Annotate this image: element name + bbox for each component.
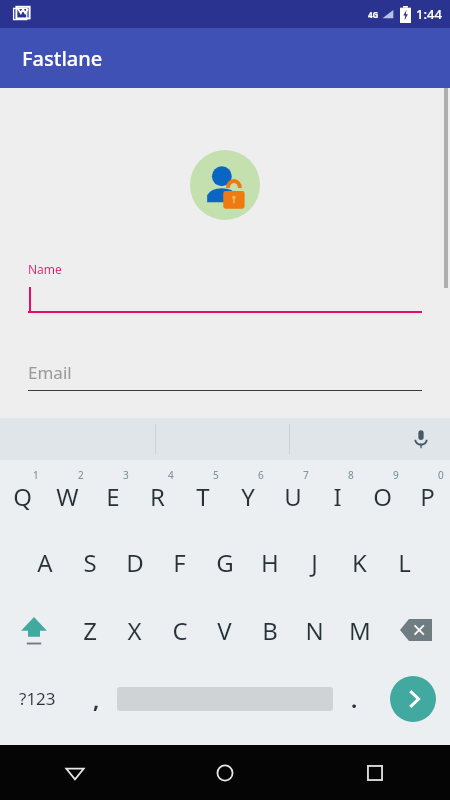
- staticText: P: [420, 480, 435, 513]
- staticText: C: [172, 614, 188, 647]
- button[interactable]: Shift: [0, 596, 67, 664]
- staticText: 9: [393, 468, 399, 482]
- button[interactable]: [117, 664, 333, 733]
- staticText: Fastlane: [22, 45, 103, 72]
- button[interactable]: N: [292, 596, 337, 664]
- button[interactable]: C: [157, 596, 202, 664]
- staticText: V: [217, 614, 232, 647]
- staticText: Email: [28, 361, 72, 384]
- button[interactable]: Recent apps: [300, 745, 450, 800]
- button[interactable]: Backspace: [382, 596, 450, 664]
- staticText: I: [333, 480, 342, 513]
- staticText: S: [83, 546, 97, 579]
- button[interactable]: A: [22, 528, 67, 596]
- staticText: F: [173, 546, 186, 579]
- staticText: 1:44: [416, 5, 442, 23]
- staticText: 3: [123, 468, 129, 482]
- button[interactable]: U: [270, 460, 315, 528]
- staticText: N: [305, 614, 324, 647]
- button[interactable]: I: [315, 460, 360, 528]
- button[interactable]: ,: [75, 664, 117, 733]
- button[interactable]: W: [45, 460, 90, 528]
- staticText: L: [398, 546, 411, 579]
- staticText: 4G: [368, 9, 379, 20]
- button[interactable]: .: [333, 664, 375, 733]
- staticText: M: [349, 614, 371, 647]
- staticText: 2: [78, 468, 84, 482]
- staticText: ,: [93, 684, 100, 714]
- button[interactable]: Email: [28, 361, 422, 391]
- staticText: 8: [348, 468, 354, 482]
- button[interactable]: Z: [67, 596, 112, 664]
- button[interactable]: V: [202, 596, 247, 664]
- staticText: 5: [213, 468, 219, 482]
- staticText: U: [284, 480, 302, 513]
- button[interactable]: S: [67, 528, 112, 596]
- staticText: E: [106, 480, 120, 513]
- staticText: 0: [438, 468, 444, 482]
- staticText: Y: [241, 480, 255, 513]
- button[interactable]: R: [135, 460, 180, 528]
- staticText: Name: [28, 261, 62, 277]
- button[interactable]: O: [360, 460, 405, 528]
- staticText: J: [311, 546, 318, 579]
- button[interactable]: Y: [225, 460, 270, 528]
- button[interactable]: Voice input: [404, 422, 438, 456]
- button[interactable]: F: [157, 528, 202, 596]
- staticText: D: [126, 546, 144, 579]
- staticText: A: [37, 546, 53, 579]
- button[interactable]: Name: [28, 261, 422, 313]
- button[interactable]: D: [112, 528, 157, 596]
- staticText: O: [373, 480, 392, 513]
- button[interactable]: G: [202, 528, 247, 596]
- staticText: B: [262, 614, 278, 647]
- button[interactable]: M: [337, 596, 382, 664]
- staticText: W: [56, 480, 79, 513]
- button[interactable]: P: [405, 460, 450, 528]
- staticText: H: [261, 546, 279, 579]
- staticText: .: [351, 684, 358, 714]
- button[interactable]: Q: [0, 460, 45, 528]
- button[interactable]: B: [247, 596, 292, 664]
- button[interactable]: J: [292, 528, 337, 596]
- button[interactable]: H: [247, 528, 292, 596]
- staticText: K: [352, 546, 367, 579]
- staticText: 4: [168, 468, 174, 482]
- staticText: R: [150, 480, 165, 513]
- staticText: G: [216, 546, 234, 579]
- staticText: ?123: [19, 687, 56, 710]
- staticText: X: [127, 614, 142, 647]
- staticText: T: [196, 480, 210, 513]
- button[interactable]: Enter: [375, 664, 450, 733]
- button[interactable]: Home: [150, 745, 300, 800]
- staticText: Q: [13, 480, 32, 513]
- button[interactable]: E: [90, 460, 135, 528]
- staticText: 6: [258, 468, 264, 482]
- button[interactable]: X: [112, 596, 157, 664]
- staticText: 1: [33, 468, 39, 482]
- button[interactable]: L: [382, 528, 427, 596]
- staticText: Z: [83, 614, 97, 647]
- button[interactable]: T: [180, 460, 225, 528]
- staticText: 7: [303, 468, 309, 482]
- button[interactable]: ?123: [0, 664, 75, 733]
- button[interactable]: K: [337, 528, 382, 596]
- button[interactable]: Back: [0, 745, 150, 800]
